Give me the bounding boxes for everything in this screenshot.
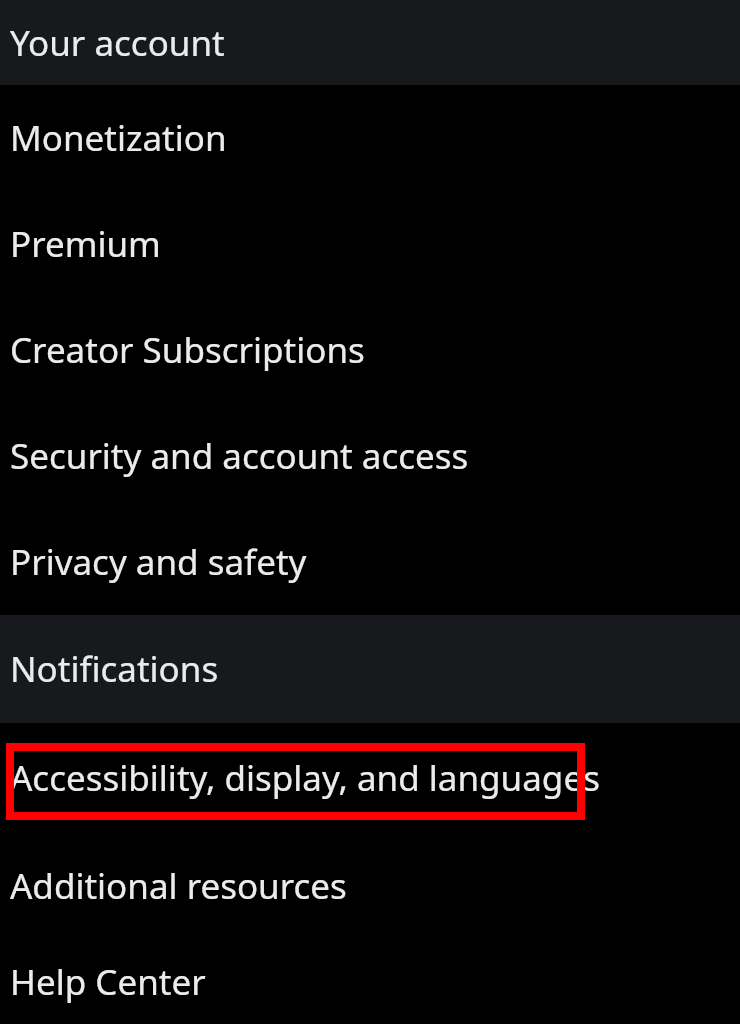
button[interactable]: Security and account access [0,403,740,509]
staticText: Privacy and safety [10,538,307,586]
button[interactable]: Monetization [0,85,740,191]
staticText: Premium [10,220,161,268]
staticText: Accessibility, display, and languages [10,754,600,802]
button[interactable]: Your account [0,0,740,85]
staticText: Help Center [10,958,206,1006]
button[interactable]: Accessibility, display, and languages [0,723,740,833]
button[interactable]: Notifications [0,615,740,723]
button[interactable]: Premium [0,191,740,297]
staticText: Creator Subscriptions [10,326,365,374]
staticText: Security and account access [10,432,469,480]
staticText: Notifications [10,645,219,693]
button[interactable]: Creator Subscriptions [0,297,740,403]
button[interactable]: Privacy and safety [0,509,740,615]
button[interactable]: Help Center [0,939,740,1024]
staticText: Your account [10,19,225,67]
staticText: Additional resources [10,862,347,910]
button[interactable]: Additional resources [0,833,740,939]
staticText: Monetization [10,114,227,162]
